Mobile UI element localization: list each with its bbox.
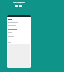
button[interactable] — [15, 5, 18, 7]
staticText: Your Webinars — [13, 1, 25, 3]
button[interactable] — [19, 5, 22, 7]
